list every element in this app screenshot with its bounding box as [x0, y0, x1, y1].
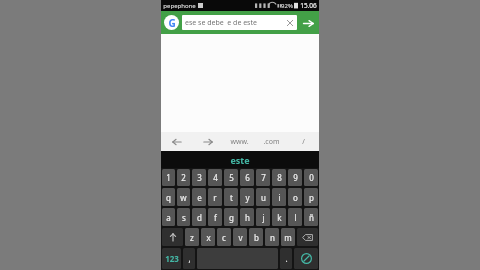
staticText: j: [262, 212, 265, 223]
button[interactable]: u: [256, 188, 270, 206]
staticText: u: [261, 192, 266, 203]
button[interactable]: .: [280, 248, 292, 269]
button[interactable]: f: [208, 208, 222, 226]
button[interactable]: Google: [164, 15, 179, 30]
staticText: e: [197, 192, 202, 203]
button[interactable]: e: [192, 188, 206, 206]
button[interactable]: 1: [162, 169, 175, 186]
button[interactable]: ese se debe e de este: [182, 15, 297, 30]
button[interactable]: 123: [162, 248, 181, 269]
button[interactable]: v: [233, 228, 247, 246]
button[interactable]: 9: [288, 169, 302, 186]
staticText: 1: [166, 172, 171, 183]
button[interactable]: i: [272, 188, 286, 206]
staticText: 9: [293, 172, 298, 183]
staticText: 0: [309, 172, 314, 183]
button[interactable]: x: [201, 228, 215, 246]
button[interactable]: 6: [240, 169, 254, 186]
button[interactable]: n: [265, 228, 279, 246]
button[interactable]: 5: [224, 169, 238, 186]
staticText: G: [168, 16, 176, 30]
button[interactable]: w: [177, 188, 190, 206]
button[interactable]: este: [161, 151, 319, 168]
staticText: 7: [261, 172, 266, 183]
button[interactable]: Back: [161, 132, 192, 151]
button[interactable]: ñ: [304, 208, 318, 226]
staticText: q: [166, 192, 171, 203]
button[interactable]: Shift: [162, 228, 183, 246]
button[interactable]: t: [224, 188, 238, 206]
staticText: x: [206, 232, 211, 243]
staticText: m: [284, 232, 292, 243]
staticText: f: [214, 212, 217, 223]
button[interactable]: s: [177, 208, 190, 226]
staticText: h: [245, 212, 250, 223]
button[interactable]: m: [281, 228, 295, 246]
staticText: .com: [263, 137, 280, 147]
button[interactable]: 4: [208, 169, 222, 186]
button[interactable]: o: [288, 188, 302, 206]
button[interactable]: z: [185, 228, 199, 246]
staticText: ese se debe e de este: [185, 18, 285, 28]
staticText: 6: [245, 172, 250, 183]
staticText: t: [230, 192, 233, 203]
button[interactable]: 0: [304, 169, 318, 186]
staticText: k: [277, 212, 282, 223]
staticText: d: [197, 212, 202, 223]
staticText: pepephone: [163, 2, 196, 10]
staticText: 15.06: [300, 1, 317, 10]
button[interactable]: a: [162, 208, 175, 226]
button[interactable]: Backspace: [297, 228, 318, 246]
staticText: .: [285, 253, 288, 264]
staticText: l: [294, 212, 297, 223]
staticText: b: [254, 232, 259, 243]
staticText: g: [229, 212, 234, 223]
staticText: o: [293, 192, 298, 203]
staticText: 4: [213, 172, 218, 183]
button[interactable]: d: [192, 208, 206, 226]
staticText: a: [166, 212, 171, 223]
button[interactable]: Clear: [285, 18, 294, 27]
button[interactable]: g: [224, 208, 238, 226]
button[interactable]: .com: [255, 132, 287, 151]
button[interactable]: r: [208, 188, 222, 206]
staticText: i: [278, 192, 281, 203]
staticText: 92%: [281, 2, 293, 10]
button[interactable]: Forward: [192, 132, 223, 151]
staticText: c: [222, 232, 226, 243]
staticText: 5: [229, 172, 234, 183]
staticText: /: [302, 137, 305, 147]
button[interactable]: c: [217, 228, 231, 246]
button[interactable]: p: [304, 188, 318, 206]
button[interactable]: www.: [223, 132, 255, 151]
button[interactable]: y: [240, 188, 254, 206]
staticText: w: [180, 192, 187, 203]
button[interactable]: Enter: [294, 248, 318, 269]
button[interactable]: q: [162, 188, 175, 206]
staticText: z: [190, 232, 194, 243]
staticText: 8: [277, 172, 282, 183]
button[interactable]: Search: [300, 15, 316, 31]
staticText: y: [245, 192, 250, 203]
button[interactable]: j: [256, 208, 270, 226]
button[interactable]: 3: [192, 169, 206, 186]
button[interactable]: 8: [272, 169, 286, 186]
staticText: ,: [188, 253, 191, 264]
button[interactable]: h: [240, 208, 254, 226]
staticText: r: [213, 192, 217, 203]
button[interactable]: ,: [183, 248, 195, 269]
button[interactable]: b: [249, 228, 263, 246]
staticText: 2: [181, 172, 186, 183]
button[interactable]: 7: [256, 169, 270, 186]
button[interactable]: 2: [177, 169, 190, 186]
button[interactable]: /: [287, 132, 319, 151]
button[interactable]: l: [288, 208, 302, 226]
staticText: v: [238, 232, 243, 243]
staticText: www.: [230, 137, 249, 147]
staticText: p: [309, 192, 314, 203]
staticText: ñ: [309, 212, 314, 223]
button[interactable]: k: [272, 208, 286, 226]
staticText: 123: [165, 253, 179, 264]
staticText: n: [270, 232, 275, 243]
